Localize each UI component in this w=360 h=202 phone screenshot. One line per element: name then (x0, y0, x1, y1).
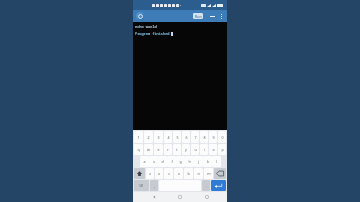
button[interactable]: Home (174, 192, 186, 202)
staticText: 9 (212, 135, 215, 140)
staticText: q (137, 147, 140, 152)
button[interactable]: f (167, 156, 176, 167)
staticText: c (168, 171, 170, 176)
button[interactable]: More options (218, 11, 224, 21)
staticText: v (178, 171, 180, 176)
button[interactable]: 0 (218, 131, 226, 143)
button[interactable]: 6 (182, 131, 190, 143)
button[interactable]: o (209, 144, 217, 155)
button[interactable]: 8 (200, 131, 208, 143)
button[interactable]: 7 (191, 131, 199, 143)
staticText: u (194, 147, 197, 152)
button[interactable]: p (218, 144, 226, 155)
button[interactable]: e (154, 144, 163, 155)
staticText: f (171, 159, 173, 164)
staticText: !#1 (139, 184, 144, 188)
button[interactable]: echo world (133, 22, 227, 130)
staticText: z (149, 171, 151, 176)
button[interactable]: Run (193, 13, 203, 19)
staticText: 1 (137, 135, 140, 140)
staticText: n (197, 171, 200, 176)
button[interactable]: w (144, 144, 153, 155)
button[interactable]: , (150, 180, 158, 191)
button[interactable]: 9 (209, 131, 217, 143)
staticText: Run (195, 14, 202, 19)
staticText: e (157, 147, 160, 152)
staticText: y (185, 147, 187, 152)
button[interactable]: x (155, 168, 163, 179)
staticText: 3 (157, 135, 160, 140)
button[interactable]: u (191, 144, 199, 155)
button[interactable]: c (164, 168, 173, 179)
button[interactable]: App logo (136, 12, 145, 21)
staticText: h (188, 159, 191, 164)
button[interactable]: 1 (134, 131, 143, 143)
staticText: m (207, 171, 211, 176)
button[interactable]: a (140, 156, 149, 167)
button[interactable]: q (134, 144, 143, 155)
staticText: s (153, 159, 155, 164)
button[interactable]: !#1 (134, 180, 149, 191)
staticText: a (143, 159, 146, 164)
button[interactable]: 4 (164, 131, 172, 143)
staticText: k (207, 159, 209, 164)
staticText: j (198, 159, 199, 164)
button[interactable]: d (158, 156, 167, 167)
staticText: p (221, 147, 224, 152)
button[interactable]: t (173, 144, 181, 155)
button[interactable]: Backspace (214, 168, 226, 179)
staticText: w (147, 147, 150, 152)
button[interactable]: Shift (134, 168, 145, 179)
staticText: 0 (221, 135, 224, 140)
button[interactable]: s (149, 156, 158, 167)
staticText: 6 (185, 135, 188, 140)
staticText: g (179, 159, 182, 164)
button[interactable]: v (174, 168, 183, 179)
staticText: . (206, 183, 207, 188)
button[interactable]: 5 (173, 131, 181, 143)
staticText: 7 (194, 135, 197, 140)
staticText: 5 (176, 135, 179, 140)
button[interactable]: Recents (201, 192, 213, 202)
staticText: echo world (135, 24, 157, 29)
button[interactable]: j (194, 156, 203, 167)
button[interactable]: y (182, 144, 190, 155)
staticText: t (176, 147, 178, 152)
button[interactable]: h (185, 156, 194, 167)
button[interactable]: z (146, 168, 154, 179)
button[interactable]: m (204, 168, 213, 179)
staticText: l (216, 159, 217, 164)
button[interactable]: k (203, 156, 212, 167)
staticText: d (161, 159, 164, 164)
staticText: 4 (167, 135, 170, 140)
button[interactable]: Minimize (208, 12, 216, 20)
staticText: , (154, 183, 155, 188)
button[interactable]: r (164, 144, 172, 155)
button[interactable]: i (200, 144, 208, 155)
button[interactable]: Back (148, 192, 160, 202)
button[interactable]: l (212, 156, 221, 167)
staticText: i (204, 147, 205, 152)
staticText: Program finished (135, 31, 170, 36)
button[interactable]: b (184, 168, 193, 179)
button[interactable]: 2 (144, 131, 153, 143)
button[interactable]: g (176, 156, 185, 167)
button[interactable]: Enter (211, 180, 226, 191)
staticText: 2 (147, 135, 150, 140)
staticText: x (158, 171, 160, 176)
button[interactable]: 3 (154, 131, 163, 143)
staticText: b (187, 171, 190, 176)
button[interactable]: n (194, 168, 203, 179)
staticText: o (212, 147, 215, 152)
staticText: 8 (203, 135, 206, 140)
staticText: r (167, 147, 169, 152)
